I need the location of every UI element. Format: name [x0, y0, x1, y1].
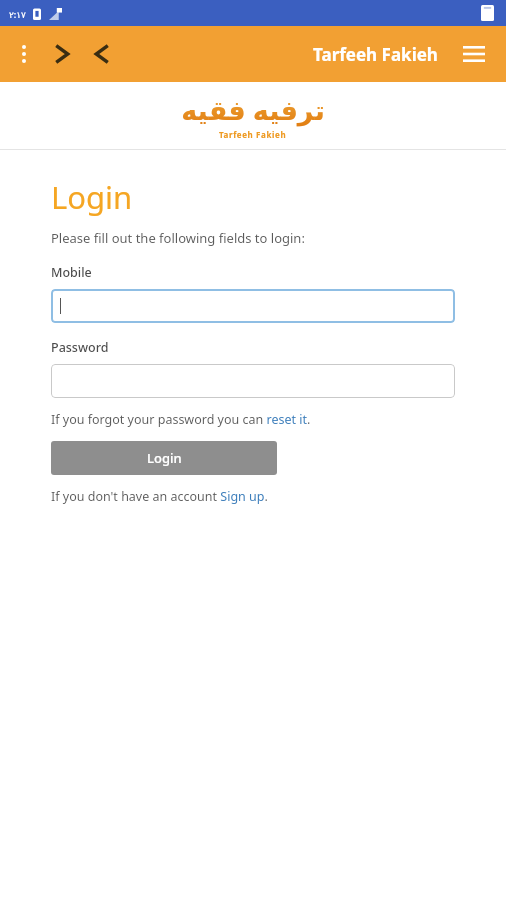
- staticText: Tarfeeh Fakieh: [219, 129, 287, 140]
- button[interactable]: Login: [51, 441, 277, 475]
- button[interactable]: Forward: [42, 34, 82, 74]
- button[interactable]: More options: [6, 36, 42, 72]
- button[interactable]: If you forgot your password you can rese…: [51, 411, 311, 428]
- button[interactable]: Password input: [51, 364, 455, 398]
- button[interactable]: Menu: [452, 32, 496, 76]
- staticText: Please fill out the following fields to …: [51, 229, 305, 247]
- staticText: Login: [51, 176, 133, 218]
- staticText: ترفيه فقيه: [181, 91, 325, 128]
- staticText: Mobile: [51, 264, 92, 281]
- staticText: Tarfeeh Fakieh: [313, 43, 438, 66]
- button[interactable]: Back: [82, 34, 122, 74]
- staticText: Password: [51, 339, 109, 356]
- staticText: ٢:١٧: [9, 8, 26, 20]
- button[interactable]: Mobile input: [51, 289, 455, 323]
- staticText: Login: [147, 449, 182, 467]
- button[interactable]: If you don't have an account Sign up.: [51, 488, 268, 505]
